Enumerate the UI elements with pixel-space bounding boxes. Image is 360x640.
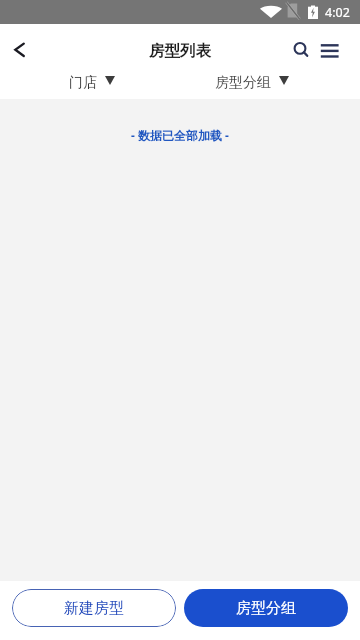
button[interactable]: 房型分组 — [184, 589, 348, 627]
staticText: 新建房型 — [64, 599, 124, 618]
button[interactable]: 门店 — [59, 68, 125, 99]
staticText: 房型分组 — [236, 599, 296, 618]
button[interactable]: Menu — [314, 24, 346, 68]
button[interactable]: 房型分组 — [205, 68, 299, 99]
staticText: - 数据已全部加载 - — [0, 127, 360, 143]
button[interactable]: 新建房型 — [12, 589, 176, 627]
button[interactable]: Back — [0, 24, 44, 68]
button[interactable]: Search — [286, 24, 314, 68]
staticText: 房型列表 — [149, 41, 211, 61]
staticText: 4:02 — [325, 4, 350, 21]
staticText: 门店 — [69, 74, 97, 92]
staticText: 房型分组 — [215, 74, 271, 92]
